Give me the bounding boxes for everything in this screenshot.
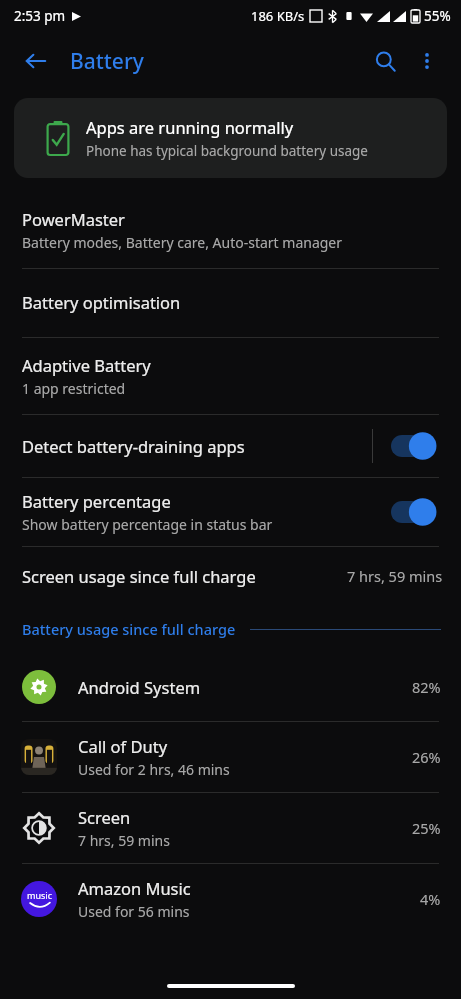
staticText: Battery usage since full charge [22,619,236,639]
button[interactable]: More options [407,41,447,81]
staticText: Apps are running normally [86,116,294,138]
staticText: Used for 2 hrs, 46 mins [78,760,230,779]
staticText: Phone has typical background battery usa… [86,142,368,160]
staticText: 26% [412,747,441,767]
staticText: Amazon Music [78,877,191,899]
staticText: 82% [412,677,441,697]
button[interactable]: Detect battery-draining apps [0,415,461,477]
staticText: Detect battery-draining apps [22,435,245,457]
button[interactable]: Search [363,39,407,83]
staticText: Used for 56 mins [78,902,190,921]
staticText: Screen [78,806,131,828]
staticText: Battery percentage [22,490,171,512]
staticText: 186 KB/s [251,7,305,25]
button[interactable]: music [0,864,461,934]
staticText: Call of Duty [78,735,168,757]
staticText: Show battery percentage in status bar [22,515,273,534]
button[interactable]: Detect battery-draining apps [391,431,443,461]
staticText: 55% [424,7,451,25]
staticText: Battery modes, Battery care, Auto-start … [22,233,343,252]
staticText: Adaptive Battery [22,354,151,376]
staticText: Battery optimisation [22,291,181,313]
staticText: Screen usage since full charge [22,565,256,587]
staticText: 4% [420,889,441,909]
button[interactable]: PowerMaster [0,194,461,268]
button[interactable]: Back [16,41,56,81]
staticText: Battery [70,47,144,76]
staticText: 2:53 pm [14,7,66,25]
staticText: Android System [78,676,201,698]
button[interactable]: Apps are running normally [14,98,447,178]
staticText: music [27,889,52,901]
staticText: 25% [412,818,441,838]
staticText: 1 app restricted [22,379,126,398]
button[interactable]: Call of Duty [0,722,461,792]
button[interactable]: Screen [0,793,461,863]
button[interactable]: Battery percentage [391,497,443,527]
button[interactable]: Android System [0,653,461,721]
staticText: 7 hrs, 59 mins [78,831,170,850]
button[interactable]: Battery optimisation [0,269,461,337]
button[interactable]: Battery percentage [0,478,461,546]
staticText: 7 hrs, 59 mins [347,566,443,586]
staticText: PowerMaster [22,208,125,230]
button[interactable]: Adaptive Battery [0,338,461,414]
button[interactable]: Screen usage since full charge [0,547,461,605]
